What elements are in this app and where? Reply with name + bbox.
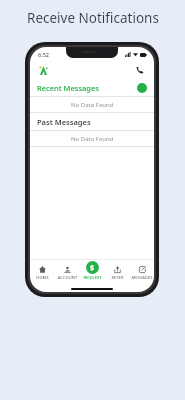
staticText: $ xyxy=(90,263,95,273)
button[interactable]: Call xyxy=(133,63,147,77)
staticText: Past Messages xyxy=(37,117,91,127)
button[interactable]: HOME xyxy=(30,261,55,285)
button[interactable]: Recent Messages xyxy=(30,79,154,96)
button[interactable]: $ xyxy=(80,261,105,285)
staticText: Receive Notifications xyxy=(27,9,159,27)
staticText: REFER xyxy=(105,275,130,280)
button[interactable]: MESSAGES xyxy=(130,261,154,285)
staticText: MESSAGES xyxy=(130,275,154,280)
staticText: No Data Found xyxy=(71,135,114,143)
staticText: HOME xyxy=(30,275,55,280)
button[interactable]: Past Messages xyxy=(30,113,154,130)
button[interactable]: ACCOUNT xyxy=(55,261,80,285)
staticText: REQUEST xyxy=(80,275,105,280)
staticText: No Data Found xyxy=(71,101,114,109)
button[interactable]: App logo xyxy=(37,64,50,77)
button[interactable]: REFER xyxy=(105,261,130,285)
staticText: ACCOUNT xyxy=(55,275,80,280)
staticText: 6:52 xyxy=(38,51,49,58)
staticText: Recent Messages xyxy=(37,83,99,93)
